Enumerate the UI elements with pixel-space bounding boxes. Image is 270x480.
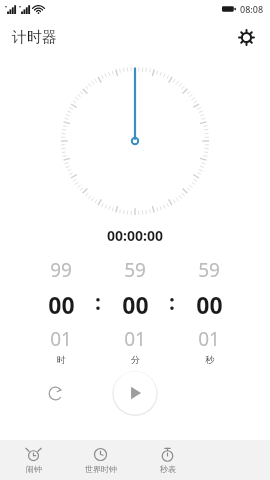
staticText: 计时器 (12, 28, 57, 47)
staticText: 00 (122, 289, 149, 320)
staticText: 闹钟 (26, 464, 42, 474)
staticText: 08:08 (240, 3, 264, 15)
staticText: 59 (198, 257, 220, 283)
staticText: : (95, 288, 101, 317)
button[interactable]: 59 (104, 257, 166, 365)
staticText: 时 (57, 354, 66, 365)
button[interactable]: Reset (39, 377, 71, 409)
staticText: 秒 (205, 354, 214, 365)
staticText: 世界时钟 (85, 464, 117, 474)
staticText: 00:00:00 (107, 226, 163, 245)
button[interactable]: Settings (230, 21, 262, 53)
staticText: 01 (198, 326, 220, 352)
button[interactable]: 秒表 (134, 440, 201, 480)
staticText: 01 (124, 326, 146, 352)
button[interactable]: 世界时钟 (67, 440, 134, 480)
staticText: 01 (50, 326, 72, 352)
button[interactable]: Start timer (112, 370, 158, 416)
button[interactable]: 59 (178, 257, 240, 365)
button[interactable]: 99 (30, 257, 92, 365)
staticText: 00 (48, 289, 75, 320)
button[interactable]: 闹钟 (0, 440, 67, 480)
staticText: : (169, 288, 175, 317)
staticText: 99 (50, 257, 72, 283)
staticText: 00 (196, 289, 223, 320)
staticText: 分 (131, 354, 140, 365)
staticText: 秒表 (160, 464, 176, 474)
staticText: 59 (124, 257, 146, 283)
